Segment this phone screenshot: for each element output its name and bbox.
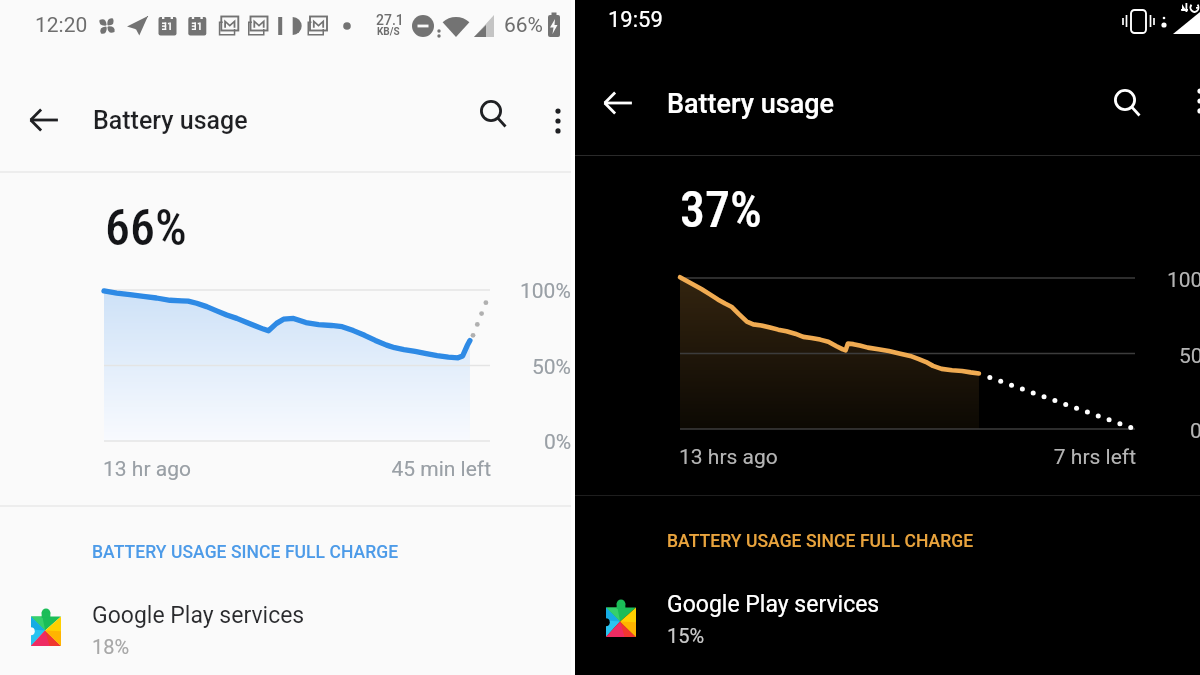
staticText: Google Play services bbox=[667, 591, 880, 618]
staticText: 13 hrs ago bbox=[679, 445, 778, 470]
staticText: Battery usage bbox=[93, 106, 248, 135]
staticText: BATTERY USAGE SINCE FULL CHARGE bbox=[92, 542, 399, 563]
staticText: 45 min left bbox=[300, 457, 491, 482]
staticText: Battery usage bbox=[667, 88, 834, 120]
staticText: Google Play services bbox=[92, 602, 305, 629]
staticText: 27.1 bbox=[376, 12, 404, 28]
staticText: 37% bbox=[680, 181, 762, 240]
button[interactable]: Google Play services bbox=[575, 577, 1200, 665]
staticText: 66% bbox=[504, 13, 543, 38]
staticText: BATTERY USAGE SINCE FULL CHARGE bbox=[667, 531, 974, 552]
button[interactable]: Search bbox=[466, 87, 522, 143]
button[interactable]: More options bbox=[1175, 76, 1200, 126]
button[interactable]: Back bbox=[16, 92, 72, 148]
staticText: 18% bbox=[92, 635, 130, 658]
staticText: 100% bbox=[520, 279, 571, 304]
button[interactable]: Search bbox=[1100, 76, 1156, 132]
staticText: 66% bbox=[105, 199, 187, 258]
staticText: 0 bbox=[1190, 419, 1200, 444]
button[interactable]: Google Play services bbox=[0, 588, 571, 675]
staticText: 50 bbox=[1179, 344, 1200, 369]
staticText: 13 hr ago bbox=[103, 457, 191, 482]
button[interactable]: More options bbox=[533, 96, 583, 146]
staticText: 7 hrs left bbox=[955, 445, 1136, 470]
staticText: 19:59 bbox=[608, 7, 663, 33]
button[interactable]: Back bbox=[590, 75, 646, 131]
staticText: 50% bbox=[532, 355, 571, 380]
staticText: 12:20 bbox=[35, 13, 88, 38]
staticText: KB/S bbox=[377, 26, 400, 38]
staticText: 100 bbox=[1167, 268, 1200, 293]
staticText: 0% bbox=[544, 430, 572, 455]
staticText: 15% bbox=[667, 624, 705, 647]
